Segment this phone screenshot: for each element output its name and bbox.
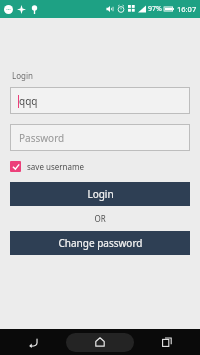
- staticText: 97%: [148, 4, 162, 14]
- staticText: Login: [12, 70, 33, 81]
- button[interactable]: Password: [10, 124, 190, 151]
- staticText: save username: [27, 161, 84, 172]
- staticText: qqq: [19, 94, 38, 108]
- button[interactable]: qqq: [10, 87, 190, 114]
- button[interactable]: Back: [0, 329, 66, 355]
- staticText: OR: [94, 213, 106, 224]
- staticText: Password: [19, 131, 65, 145]
- staticText: 16:07: [177, 4, 197, 14]
- button[interactable]: Login: [10, 182, 190, 206]
- button[interactable]: Change password: [10, 231, 190, 255]
- button[interactable]: Home: [66, 329, 133, 355]
- staticText: Change password: [58, 236, 143, 250]
- button[interactable]: Recent apps: [133, 329, 200, 355]
- button[interactable]: save username: [10, 159, 84, 174]
- staticText: Login: [87, 187, 114, 201]
